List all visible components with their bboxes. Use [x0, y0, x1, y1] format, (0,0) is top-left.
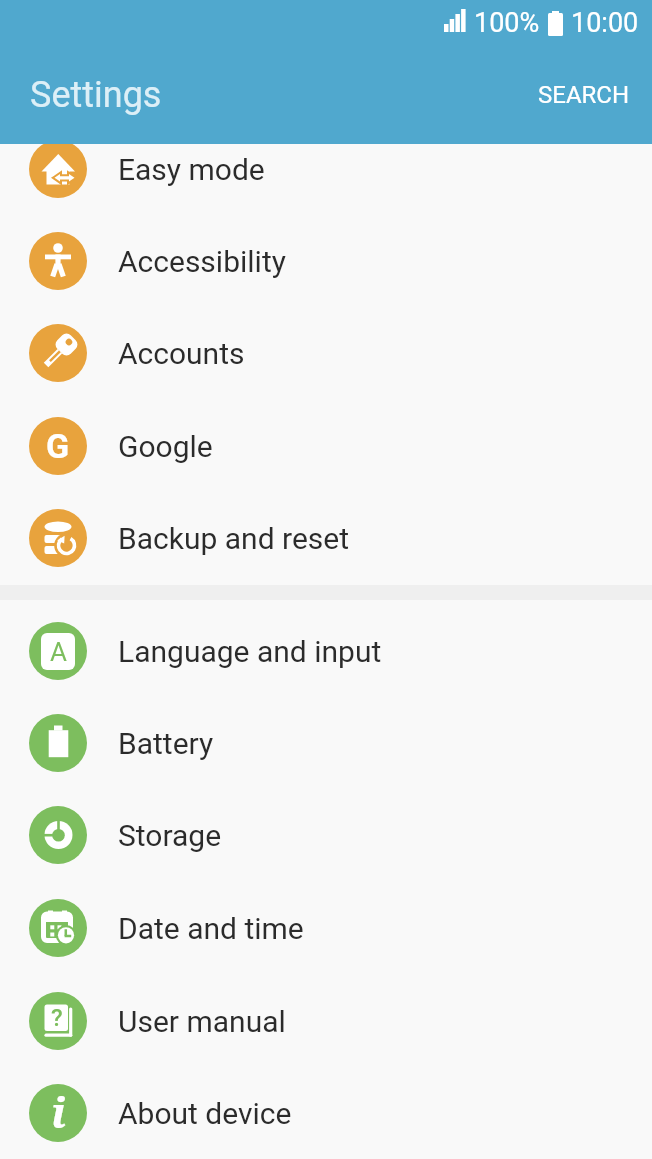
- staticText: Language and input: [118, 634, 382, 669]
- staticText: 100%: [474, 7, 540, 39]
- staticText: Backup and reset: [118, 521, 349, 556]
- staticText: Accounts: [118, 336, 245, 371]
- button[interactable]: Easy mode: [0, 123, 652, 215]
- button[interactable]: Accessibility: [0, 215, 652, 307]
- button[interactable]: Accounts: [0, 307, 652, 399]
- button[interactable]: Battery: [0, 697, 652, 789]
- button[interactable]: Date and time: [0, 882, 652, 974]
- button[interactable]: Storage: [0, 789, 652, 881]
- staticText: Google: [118, 429, 213, 464]
- staticText: ?: [51, 1004, 63, 1032]
- button[interactable]: G: [0, 400, 652, 492]
- staticText: Battery: [118, 726, 214, 761]
- staticText: Settings: [30, 74, 162, 116]
- staticText: i: [51, 1084, 66, 1140]
- button[interactable]: ?: [0, 975, 652, 1067]
- button[interactable]: Backup and reset: [0, 492, 652, 584]
- staticText: 10:00: [571, 7, 639, 39]
- staticText: Easy mode: [118, 152, 265, 187]
- staticText: About device: [118, 1096, 292, 1131]
- button[interactable]: A: [0, 605, 652, 697]
- staticText: SEARCH: [538, 81, 630, 109]
- staticText: Accessibility: [118, 244, 286, 279]
- staticText: Date and time: [118, 911, 304, 946]
- button[interactable]: SEARCH: [532, 75, 636, 115]
- staticText: Storage: [118, 818, 222, 853]
- staticText: User manual: [118, 1004, 286, 1039]
- staticText: A: [50, 637, 67, 667]
- button[interactable]: i: [0, 1067, 652, 1159]
- staticText: G: [46, 426, 70, 466]
